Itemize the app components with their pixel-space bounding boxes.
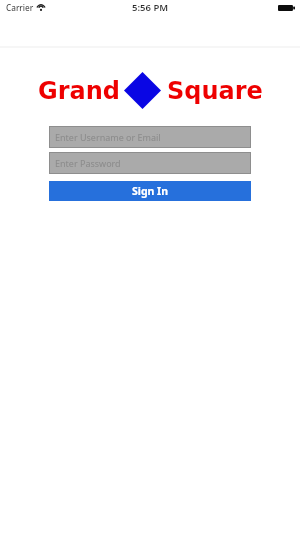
other: Grand Square logo <box>124 72 161 109</box>
button[interactable]: Enter Password <box>49 152 251 174</box>
other: Battery full <box>278 5 295 11</box>
staticText: 5:56 PM <box>132 1 169 14</box>
button[interactable]: Sign In <box>49 181 251 201</box>
staticText: Sign In <box>132 184 169 198</box>
staticText: Square <box>167 77 263 105</box>
button[interactable]: Enter Username or Email <box>49 126 251 148</box>
staticText: Carrier <box>6 2 34 13</box>
other: Wi-Fi signal <box>36 4 46 11</box>
staticText: Enter Password <box>55 157 121 169</box>
staticText: Grand <box>38 77 120 105</box>
staticText: Enter Username or Email <box>55 131 161 143</box>
